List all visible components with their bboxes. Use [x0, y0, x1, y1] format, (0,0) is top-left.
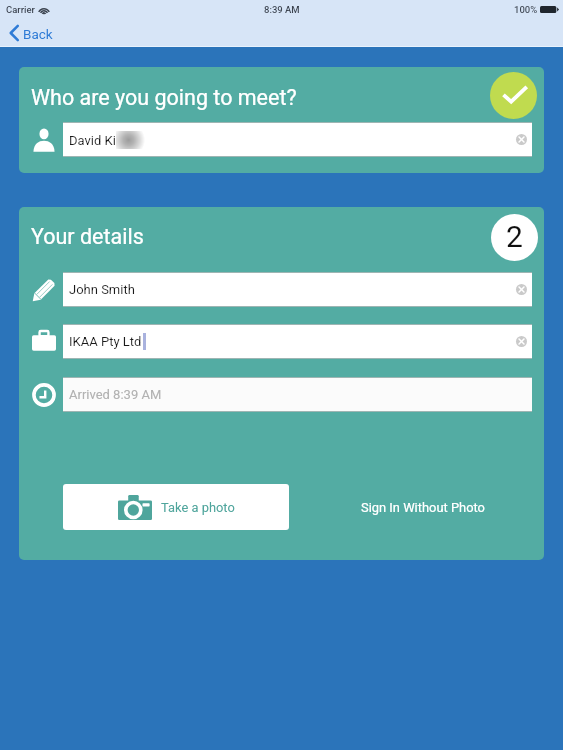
staticText: Your details: [31, 224, 144, 249]
staticText: 100%: [514, 4, 538, 15]
staticText: Who are you going to meet?: [31, 85, 297, 110]
staticText: IKAA Pty Ltd: [69, 334, 142, 349]
button[interactable]: John Smith: [63, 272, 532, 307]
button[interactable]: Take a photo: [63, 484, 289, 530]
button[interactable]: Sign In Without Photo: [350, 484, 496, 530]
staticText: 2: [506, 219, 523, 254]
staticText: 8:39 AM: [264, 4, 300, 15]
staticText: John Smith: [69, 282, 135, 297]
staticText: Take a photo: [161, 500, 235, 515]
button[interactable]: Confirmed: [490, 72, 537, 119]
staticText: Back: [23, 26, 53, 42]
button[interactable]: 2: [491, 214, 538, 261]
button[interactable]: Back: [0, 23, 65, 45]
button[interactable]: Arrived 8:39 AM: [63, 377, 532, 412]
staticText: Arrived 8:39 AM: [69, 387, 162, 402]
staticText: Carrier: [6, 4, 35, 15]
staticText: Sign In Without Photo: [361, 500, 485, 515]
button[interactable]: IKAA Pty Ltd: [63, 324, 532, 359]
button[interactable]: David Ki: [63, 122, 532, 157]
staticText: David Ki: [69, 133, 116, 148]
